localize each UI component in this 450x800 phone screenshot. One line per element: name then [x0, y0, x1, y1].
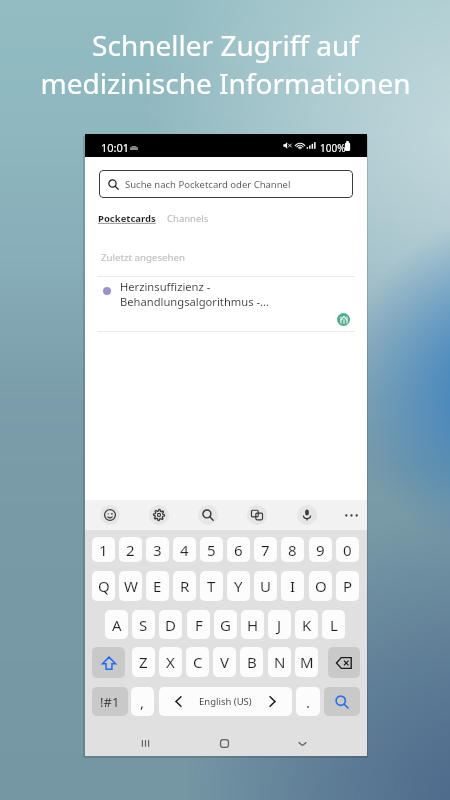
staticText: 4 — [180, 540, 189, 560]
button[interactable]: Voice input — [297, 505, 317, 525]
staticText: D — [165, 615, 176, 635]
staticText: T — [207, 576, 216, 596]
button[interactable]: U — [254, 571, 277, 601]
staticText: M — [300, 652, 314, 672]
button[interactable]: Pocketcards — [98, 212, 156, 225]
button[interactable]: V — [213, 647, 236, 677]
staticText: C — [193, 652, 203, 672]
button[interactable]: Back — [290, 731, 314, 755]
staticText: X — [166, 652, 175, 672]
staticText: 9 — [316, 540, 325, 560]
staticText: Zuletzt angesehen — [101, 251, 185, 264]
button[interactable]: Translate — [247, 505, 267, 525]
button[interactable]: 0 — [336, 537, 359, 562]
staticText: Channels — [167, 212, 209, 225]
staticText: Herzinsuffizienz - Behandlungsalgorithmu… — [120, 279, 269, 309]
staticText: L — [330, 615, 338, 635]
staticText: R — [180, 576, 190, 596]
button[interactable]: Home — [212, 731, 236, 755]
staticText: K — [302, 615, 312, 635]
button[interactable]: 4 — [173, 537, 196, 562]
button[interactable]: 8 — [281, 537, 304, 562]
button[interactable]: J — [268, 610, 291, 639]
button[interactable]: S — [132, 610, 155, 639]
button[interactable]: 5 — [200, 537, 223, 562]
button[interactable]: I — [281, 571, 304, 601]
staticText: 100% — [320, 141, 346, 155]
staticText: , — [140, 692, 145, 712]
button[interactable]: X — [159, 647, 182, 677]
button[interactable]: Space — [159, 687, 292, 716]
button[interactable]: C — [186, 647, 209, 677]
button[interactable]: Herzinsuffizienz - Behandlungsalgorithmu… — [85, 277, 367, 331]
staticText: 6 — [234, 540, 243, 560]
button[interactable]: Channels — [167, 212, 209, 225]
staticText: 3 — [153, 540, 162, 560]
button[interactable]: L — [322, 610, 345, 639]
button[interactable]: H — [241, 610, 264, 639]
button[interactable]: P — [336, 571, 359, 601]
button[interactable]: D — [159, 610, 182, 639]
button[interactable]: M — [295, 647, 318, 677]
staticText: H — [247, 615, 259, 635]
button[interactable]: G — [214, 610, 237, 639]
button[interactable]: Keyboard settings — [149, 505, 169, 525]
button[interactable]: K — [295, 610, 318, 639]
button[interactable]: F — [187, 610, 210, 639]
staticText: Y — [234, 576, 243, 596]
button[interactable]: , — [131, 687, 154, 716]
button[interactable]: 1 — [92, 537, 115, 562]
button[interactable]: 9 — [309, 537, 332, 562]
button[interactable]: A — [105, 610, 128, 639]
staticText: 5 — [207, 540, 216, 560]
button[interactable]: E — [146, 571, 169, 601]
staticText: J — [277, 615, 282, 635]
button[interactable]: 6 — [227, 537, 250, 562]
button[interactable]: O — [309, 571, 332, 601]
button[interactable]: 3 — [146, 537, 169, 562]
button[interactable]: Suche nach Pocketcard oder Channel — [99, 170, 353, 198]
staticText: W — [124, 576, 138, 596]
staticText: 2 — [126, 540, 135, 560]
button[interactable]: Search — [198, 505, 218, 525]
staticText: Q — [98, 576, 110, 596]
staticText: 10:01 — [101, 140, 130, 155]
button[interactable]: 7 — [254, 537, 277, 562]
staticText: 7 — [261, 540, 270, 560]
staticText: G — [220, 615, 231, 635]
button[interactable]: Y — [227, 571, 250, 601]
button[interactable]: T — [200, 571, 223, 601]
button[interactable]: Shift — [92, 647, 125, 678]
staticText: 8 — [288, 540, 297, 560]
staticText: E — [153, 576, 162, 596]
staticText: . — [306, 692, 311, 712]
staticText: Z — [139, 652, 148, 672]
staticText: A — [112, 615, 122, 635]
button[interactable]: W — [119, 571, 142, 601]
staticText: 1 — [99, 540, 108, 560]
staticText: F — [195, 615, 203, 635]
button[interactable]: Backspace — [328, 647, 360, 678]
staticText: medizinische Informationen — [40, 64, 411, 102]
button[interactable]: N — [268, 647, 291, 677]
button[interactable]: R — [173, 571, 196, 601]
button[interactable]: !#1 — [92, 687, 128, 716]
button[interactable]: Z — [132, 647, 155, 677]
staticText: Pocketcards — [98, 212, 156, 225]
button[interactable]: More options — [341, 505, 361, 525]
staticText: S — [139, 615, 148, 635]
staticText: Schneller Zugriff auf — [92, 26, 359, 64]
staticText: I — [290, 576, 296, 596]
button[interactable]: 2 — [119, 537, 142, 562]
button[interactable]: Recents — [133, 731, 157, 755]
button[interactable]: B — [240, 647, 263, 677]
button[interactable]: Emoji — [100, 505, 120, 525]
button[interactable]: . — [296, 687, 320, 716]
button[interactable]: Search — [324, 687, 360, 716]
staticText: B — [247, 652, 257, 672]
staticText: N — [274, 652, 286, 672]
button[interactable]: Q — [92, 571, 115, 601]
staticText: 0 — [343, 540, 352, 560]
staticText: P — [343, 576, 353, 596]
staticText: V — [220, 652, 230, 672]
